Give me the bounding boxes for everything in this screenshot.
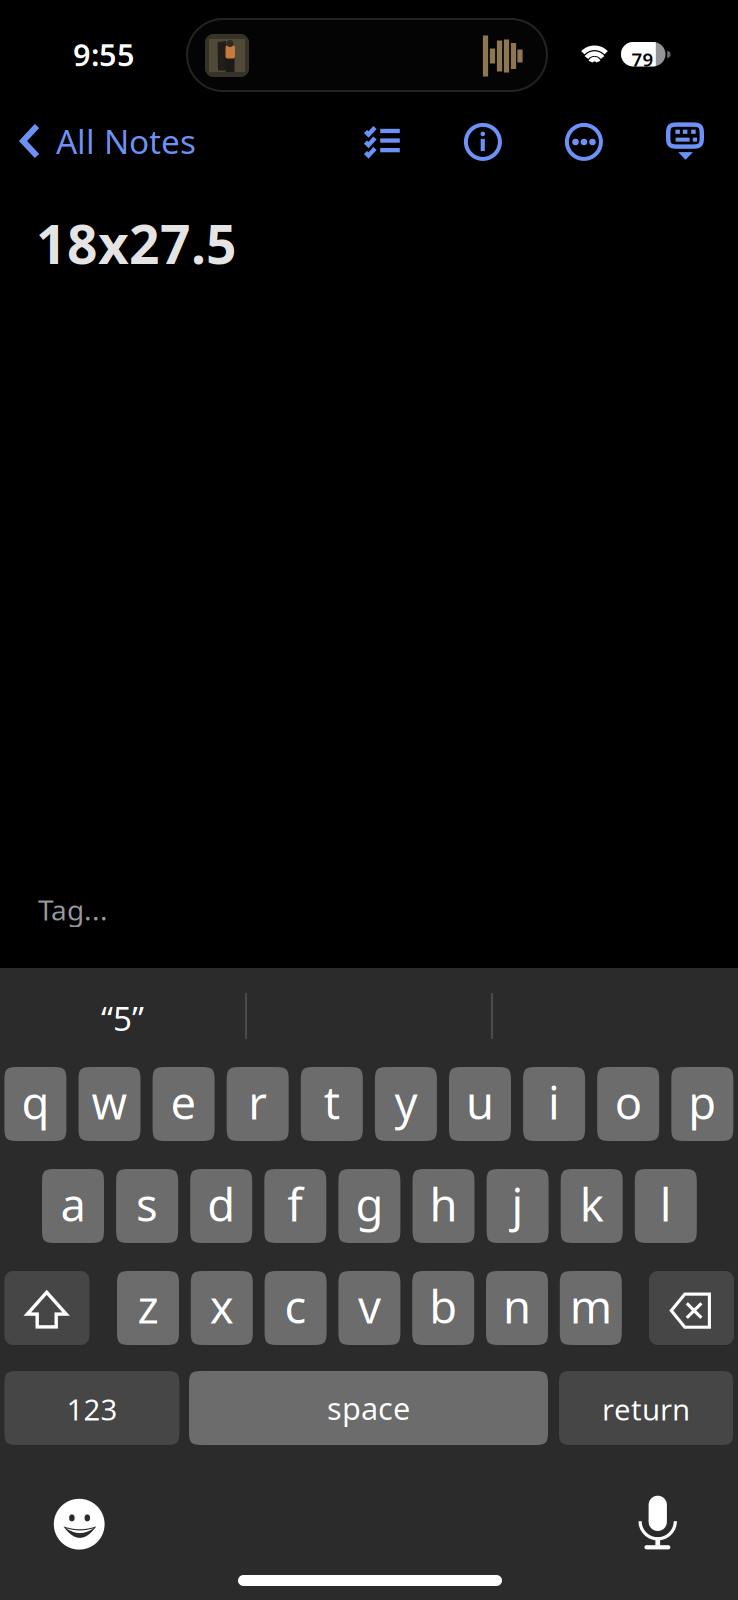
- button[interactable]: r: [227, 1067, 289, 1141]
- staticText: q: [21, 1072, 49, 1132]
- button[interactable]: u: [449, 1067, 511, 1141]
- button[interactable]: m: [560, 1271, 622, 1345]
- staticText: e: [171, 1072, 197, 1132]
- button[interactable]: x: [191, 1271, 253, 1345]
- button[interactable]: Note Details: [455, 114, 511, 170]
- button[interactable]: h: [412, 1169, 474, 1243]
- button[interactable]: Dictate: [628, 1492, 688, 1552]
- staticText: o: [615, 1072, 642, 1132]
- staticText: d: [207, 1174, 235, 1234]
- button[interactable]: Shift: [4, 1271, 89, 1345]
- staticText: v: [358, 1276, 381, 1336]
- staticText: 18x27.5: [36, 208, 237, 279]
- button[interactable]: l: [635, 1169, 697, 1243]
- staticText: All Notes: [56, 119, 196, 163]
- button[interactable]: f: [264, 1169, 326, 1243]
- staticText: j: [512, 1174, 524, 1234]
- staticText: z: [137, 1276, 158, 1336]
- staticText: Tag...: [38, 891, 108, 928]
- button[interactable]: return: [559, 1371, 733, 1445]
- button[interactable]: c: [265, 1271, 327, 1345]
- staticText: return: [602, 1389, 690, 1428]
- staticText: 79: [631, 47, 653, 72]
- staticText: 123: [66, 1389, 117, 1428]
- button[interactable]: p: [671, 1067, 733, 1141]
- button[interactable]: k: [561, 1169, 623, 1243]
- button[interactable]: z: [117, 1271, 179, 1345]
- staticText: t: [324, 1072, 340, 1132]
- button[interactable]: Hide Keyboard: [657, 114, 713, 170]
- staticText: x: [210, 1276, 234, 1336]
- staticText: g: [355, 1174, 383, 1234]
- staticText: s: [136, 1174, 158, 1234]
- button[interactable]: a: [42, 1169, 104, 1243]
- button[interactable]: More: [556, 114, 612, 170]
- button[interactable]: g: [338, 1169, 400, 1243]
- staticText: c: [285, 1276, 307, 1336]
- staticText: b: [429, 1276, 457, 1336]
- staticText: k: [580, 1174, 604, 1234]
- button[interactable]: s: [116, 1169, 178, 1243]
- button[interactable]: n: [486, 1271, 548, 1345]
- button[interactable]: All Notes: [9, 112, 199, 170]
- button[interactable]: Delete: [649, 1271, 734, 1345]
- button[interactable]: w: [78, 1067, 140, 1141]
- staticText: w: [91, 1072, 127, 1132]
- button[interactable]: Checklist: [353, 114, 409, 170]
- staticText: space: [327, 1388, 410, 1428]
- button[interactable]: v: [338, 1271, 400, 1345]
- button[interactable]: e: [153, 1067, 215, 1141]
- button[interactable]: Emoji Keyboard: [49, 1494, 109, 1554]
- staticText: “5”: [101, 996, 144, 1040]
- staticText: n: [503, 1276, 531, 1336]
- staticText: u: [466, 1072, 494, 1132]
- button[interactable]: b: [412, 1271, 474, 1345]
- button[interactable]: i: [523, 1067, 585, 1141]
- staticText: p: [688, 1072, 716, 1132]
- staticText: m: [570, 1276, 612, 1336]
- staticText: l: [660, 1174, 672, 1234]
- button[interactable]: space: [189, 1371, 548, 1445]
- button[interactable]: y: [375, 1067, 437, 1141]
- button[interactable]: 123: [4, 1371, 179, 1445]
- button[interactable]: j: [487, 1169, 549, 1243]
- staticText: i: [548, 1072, 560, 1132]
- staticText: f: [287, 1174, 303, 1234]
- button[interactable]: d: [190, 1169, 252, 1243]
- button[interactable]: t: [301, 1067, 363, 1141]
- staticText: h: [429, 1174, 457, 1234]
- button[interactable]: o: [597, 1067, 659, 1141]
- staticText: 9:55: [73, 34, 135, 75]
- button[interactable]: q: [4, 1067, 66, 1141]
- staticText: y: [394, 1072, 417, 1132]
- staticText: r: [248, 1072, 267, 1132]
- staticText: a: [60, 1174, 85, 1234]
